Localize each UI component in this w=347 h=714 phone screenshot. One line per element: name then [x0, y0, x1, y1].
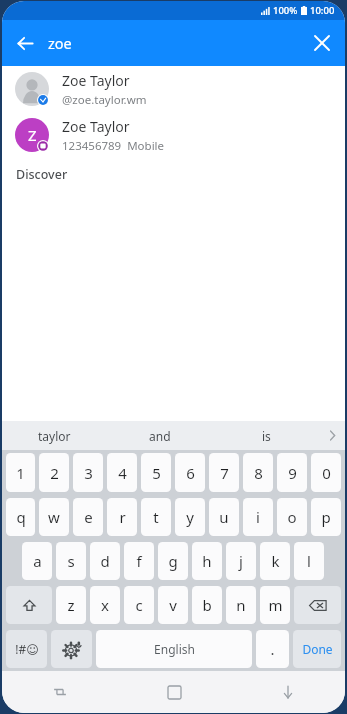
staticText: Discover: [16, 166, 68, 183]
staticText: 3: [84, 463, 93, 483]
staticText: 123456789 Mobile: [62, 138, 165, 154]
staticText: zoe: [48, 33, 72, 53]
staticText: m: [268, 595, 283, 615]
button[interactable]: t: [141, 498, 171, 536]
button[interactable]: l: [294, 542, 324, 580]
staticText: !#☺: [15, 641, 39, 657]
button[interactable]: .: [256, 630, 289, 668]
staticText: 9: [288, 463, 297, 483]
staticText: Z: [28, 125, 37, 145]
button[interactable]: Zoe Taylor: [2, 66, 345, 112]
staticText: a: [33, 551, 42, 571]
button[interactable]: 3: [73, 453, 103, 492]
staticText: b: [202, 595, 212, 615]
button[interactable]: y: [175, 498, 205, 536]
staticText: e: [84, 507, 93, 527]
staticText: n: [236, 595, 246, 615]
staticText: z: [67, 595, 75, 615]
button[interactable]: a: [22, 542, 52, 580]
button[interactable]: Done: [293, 630, 341, 668]
staticText: .: [270, 639, 275, 659]
button[interactable]: !#☺: [6, 630, 47, 668]
button[interactable]: 9: [277, 453, 307, 492]
staticText: 8: [254, 463, 263, 483]
staticText: k: [271, 551, 280, 571]
button[interactable]: English: [96, 630, 252, 668]
button[interactable]: 1: [6, 453, 35, 492]
staticText: is: [262, 428, 271, 444]
button[interactable]: i: [243, 498, 273, 536]
button[interactable]: Clear search: [299, 20, 345, 66]
button[interactable]: z: [56, 586, 86, 624]
button[interactable]: More suggestions: [319, 421, 345, 450]
button[interactable]: e: [73, 498, 103, 536]
button[interactable]: Keyboard settings: [51, 630, 92, 668]
button[interactable]: g: [158, 542, 188, 580]
button[interactable]: and: [107, 421, 213, 450]
staticText: 6: [186, 463, 195, 483]
button[interactable]: m: [260, 586, 290, 624]
staticText: 1: [16, 463, 25, 483]
button[interactable]: v: [158, 586, 188, 624]
button[interactable]: r: [107, 498, 137, 536]
button[interactable]: f: [124, 542, 154, 580]
button[interactable]: Back: [2, 20, 48, 66]
staticText: t: [153, 507, 159, 527]
button[interactable]: is: [213, 421, 319, 450]
button[interactable]: taylor: [2, 421, 107, 450]
staticText: 100%: [273, 4, 298, 17]
button[interactable]: x: [90, 586, 120, 624]
staticText: q: [16, 507, 26, 527]
staticText: c: [135, 595, 143, 615]
button[interactable]: Recents: [2, 671, 117, 713]
staticText: j: [239, 551, 243, 571]
staticText: u: [219, 507, 229, 527]
button[interactable]: 8: [243, 453, 273, 492]
staticText: 10:00: [310, 4, 335, 17]
staticText: f: [136, 551, 142, 571]
button[interactable]: d: [90, 542, 120, 580]
button[interactable]: 6: [175, 453, 205, 492]
staticText: 4: [118, 463, 127, 483]
staticText: 2: [50, 463, 59, 483]
button[interactable]: Shift: [6, 586, 52, 624]
button[interactable]: s: [56, 542, 86, 580]
staticText: 0: [322, 463, 331, 483]
staticText: d: [100, 551, 110, 571]
staticText: y: [186, 507, 194, 527]
staticText: w: [48, 507, 60, 527]
staticText: and: [149, 428, 171, 444]
button[interactable]: q: [6, 498, 35, 536]
button[interactable]: o: [277, 498, 307, 536]
button[interactable]: n: [226, 586, 256, 624]
staticText: h: [202, 551, 212, 571]
button[interactable]: j: [226, 542, 256, 580]
staticText: o: [287, 507, 297, 527]
button[interactable]: h: [192, 542, 222, 580]
button[interactable]: 5: [141, 453, 171, 492]
staticText: English: [154, 641, 195, 657]
button[interactable]: 7: [209, 453, 239, 492]
button[interactable]: Z: [2, 112, 345, 158]
button[interactable]: b: [192, 586, 222, 624]
staticText: taylor: [38, 428, 71, 444]
button[interactable]: 4: [107, 453, 137, 492]
button[interactable]: k: [260, 542, 290, 580]
button[interactable]: w: [39, 498, 69, 536]
staticText: @zoe.taylor.wm: [62, 92, 147, 108]
staticText: v: [169, 595, 177, 615]
button[interactable]: Hide keyboard: [231, 671, 345, 713]
button[interactable]: 2: [39, 453, 69, 492]
staticText: x: [101, 595, 109, 615]
staticText: i: [256, 507, 260, 527]
button[interactable]: u: [209, 498, 239, 536]
button[interactable]: c: [124, 586, 154, 624]
button[interactable]: p: [311, 498, 341, 536]
button[interactable]: 0: [311, 453, 341, 492]
button[interactable]: Home: [117, 671, 231, 713]
staticText: Done: [302, 641, 333, 657]
staticText: 5: [152, 463, 161, 483]
staticText: l: [307, 551, 311, 571]
staticText: 7: [220, 463, 229, 483]
button[interactable]: Backspace: [294, 586, 341, 624]
